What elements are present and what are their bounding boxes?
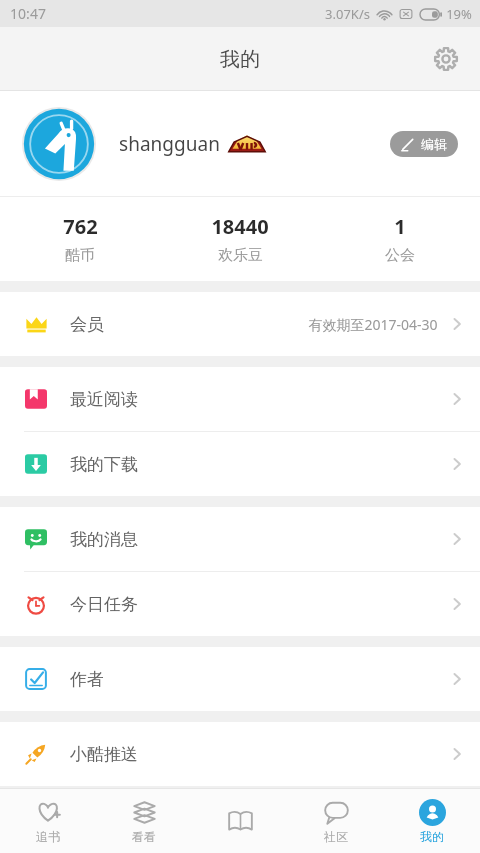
staticText: 1	[394, 213, 406, 240]
button[interactable]: 762	[0, 197, 160, 281]
staticText: 我的	[220, 47, 260, 72]
button[interactable]: 今日任务	[0, 572, 480, 636]
button[interactable]: 社区	[288, 789, 384, 853]
staticText: 18440	[211, 213, 269, 240]
button[interactable]: 我的下载	[0, 432, 480, 496]
staticText: 我的消息	[70, 529, 138, 550]
staticText: 追书	[36, 829, 60, 844]
staticText: 今日任务	[70, 594, 138, 615]
staticText: 社区	[324, 829, 348, 844]
staticText: 3.07K/s	[325, 5, 370, 23]
staticText: 有效期至2017-04-30	[308, 315, 438, 334]
staticText: 762	[63, 213, 98, 240]
button[interactable]: 18440	[160, 197, 320, 281]
staticText: 19%	[446, 5, 472, 23]
button[interactable]: 追书	[0, 789, 96, 853]
button[interactable]: 最近阅读	[0, 367, 480, 431]
button[interactable]: Library	[192, 789, 288, 853]
button[interactable]: Settings	[422, 35, 470, 83]
staticText: 编辑	[421, 136, 447, 152]
button[interactable]: 1	[320, 197, 480, 281]
button[interactable]: 编辑	[390, 131, 458, 157]
button[interactable]: 作者	[0, 647, 480, 711]
button[interactable]: 小酷推送	[0, 722, 480, 786]
staticText: 10:47	[10, 4, 46, 23]
button[interactable]: 我的	[384, 789, 480, 853]
staticText: 我的下载	[70, 454, 138, 475]
button[interactable]: shangguan	[0, 91, 480, 196]
staticText: 酷币	[65, 246, 95, 265]
staticText: 作者	[70, 669, 104, 690]
staticText: 看看	[132, 829, 156, 844]
staticText: 会员	[70, 314, 104, 335]
staticText: 我的	[420, 829, 444, 844]
staticText: 最近阅读	[70, 389, 138, 410]
button[interactable]: 看看	[96, 789, 192, 853]
button[interactable]: 会员	[0, 292, 480, 356]
button[interactable]: 我的消息	[0, 507, 480, 571]
staticText: 欢乐豆	[218, 246, 263, 265]
staticText: 公会	[385, 246, 415, 265]
staticText: shangguan	[119, 131, 220, 157]
staticText: 小酷推送	[70, 744, 138, 765]
